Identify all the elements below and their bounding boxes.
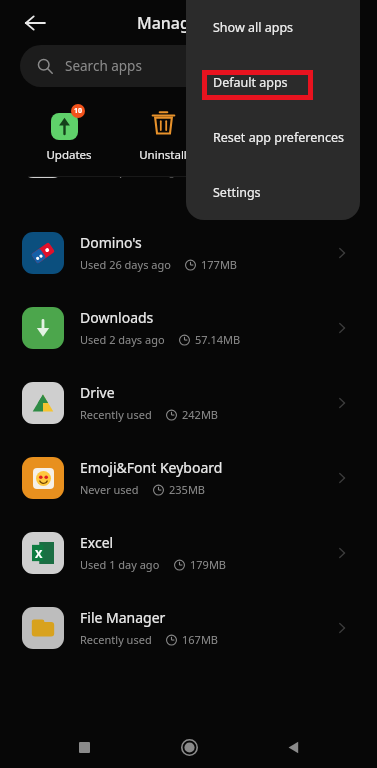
staticText: Reset app preferences bbox=[213, 129, 344, 146]
staticText: Updates bbox=[46, 147, 92, 163]
button[interactable]: Recents bbox=[64, 727, 104, 767]
button[interactable]: Search apps bbox=[20, 45, 357, 87]
button[interactable]: Back bbox=[273, 727, 313, 767]
button[interactable]: Drive bbox=[0, 365, 377, 440]
staticText: 235MB bbox=[169, 482, 206, 497]
button[interactable]: Downloads bbox=[0, 290, 377, 365]
staticText: Search apps bbox=[65, 57, 142, 75]
button[interactable]: Uninstall bbox=[116, 101, 210, 166]
button[interactable]: Home bbox=[169, 727, 209, 767]
button[interactable]: Emoji&Font Keyboard bbox=[0, 440, 377, 515]
staticText: Recently used bbox=[80, 632, 152, 647]
staticText: Show all apps bbox=[213, 19, 294, 36]
staticText: 167MB bbox=[182, 632, 219, 647]
staticText: File Manager bbox=[80, 608, 166, 627]
staticText: Settings bbox=[213, 184, 261, 201]
staticText: 10 bbox=[74, 106, 83, 116]
staticText: Drive bbox=[80, 383, 115, 402]
staticText: Domino's bbox=[80, 233, 142, 252]
button[interactable]: Show all apps bbox=[186, 0, 360, 55]
staticText: Excel bbox=[80, 533, 114, 552]
staticText: 242MB bbox=[182, 407, 219, 422]
staticText: Default apps bbox=[213, 74, 288, 91]
button[interactable]: Docs bbox=[0, 177, 377, 178]
staticText: X bbox=[35, 546, 43, 561]
button[interactable]: Domino's bbox=[0, 215, 377, 290]
button[interactable]: File Manager bbox=[0, 590, 377, 665]
staticText: Uninstall bbox=[139, 147, 187, 163]
staticText: Recently used bbox=[80, 177, 152, 178]
staticText: Used 1 day ago bbox=[80, 557, 160, 572]
staticText: Used 26 days ago bbox=[80, 257, 171, 272]
staticText: 625MB bbox=[182, 177, 219, 178]
staticText: Used 2 days ago bbox=[80, 332, 165, 347]
button[interactable]: 10 bbox=[22, 101, 116, 166]
button[interactable]: Reset app preferences bbox=[186, 110, 360, 165]
button[interactable]: Default apps bbox=[186, 55, 360, 110]
button[interactable]: Settings bbox=[186, 165, 360, 220]
staticText: 179MB bbox=[190, 557, 227, 572]
button[interactable]: X bbox=[0, 515, 377, 590]
button[interactable]: Back bbox=[14, 2, 56, 44]
staticText: Manage apps bbox=[137, 12, 241, 34]
staticText: 57.14MB bbox=[195, 332, 241, 347]
staticText: 177MB bbox=[201, 257, 238, 272]
staticText: Recently used bbox=[80, 407, 152, 422]
staticText: Emoji&Font Keyboard bbox=[80, 458, 223, 477]
staticText: Downloads bbox=[80, 308, 154, 327]
staticText: Never used bbox=[80, 482, 139, 497]
